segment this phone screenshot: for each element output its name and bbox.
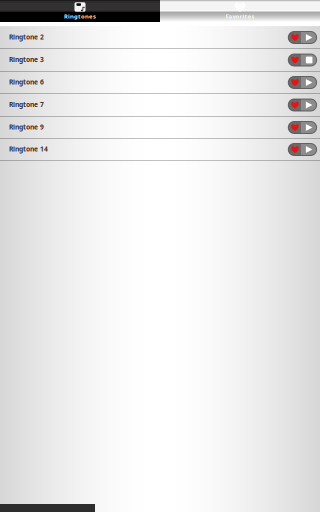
button[interactable]: Ringtone 9 (0, 116, 320, 138)
staticText: Ringtone 7 (9, 100, 44, 109)
button[interactable]: Favorite (288, 76, 302, 88)
button[interactable]: Favorite (288, 54, 302, 66)
button[interactable]: Favorite (288, 99, 302, 111)
staticText: Ringtone 9 (9, 122, 44, 132)
button[interactable]: Ringtone 7 (0, 93, 320, 116)
button[interactable]: Play (302, 99, 317, 111)
staticText: Ringtone 3 (9, 55, 44, 64)
button[interactable]: Play (302, 76, 317, 88)
button[interactable]: Ringtone 2 (0, 26, 320, 48)
button[interactable]: Play (302, 31, 317, 43)
button[interactable]: Ringtone 3 (0, 48, 320, 71)
button[interactable]: Ringtone 14 (0, 138, 320, 160)
staticText: Favorites (225, 12, 254, 20)
button[interactable]: Favorite (288, 143, 302, 155)
staticText: Ringtones (64, 12, 96, 20)
button[interactable]: Favorite (288, 121, 302, 133)
button[interactable]: Favorites (160, 0, 320, 22)
button[interactable]: Play (302, 143, 317, 155)
staticText: Ringtone 2 (9, 32, 44, 42)
staticText: Ringtone 14 (9, 144, 48, 154)
button[interactable]: Ringtones (0, 0, 160, 22)
button[interactable]: Stop (302, 54, 317, 66)
button[interactable]: Ringtone 6 (0, 71, 320, 93)
button[interactable]: Favorite (288, 31, 302, 43)
button[interactable]: Play (302, 121, 317, 133)
staticText: Ringtone 6 (9, 77, 44, 87)
